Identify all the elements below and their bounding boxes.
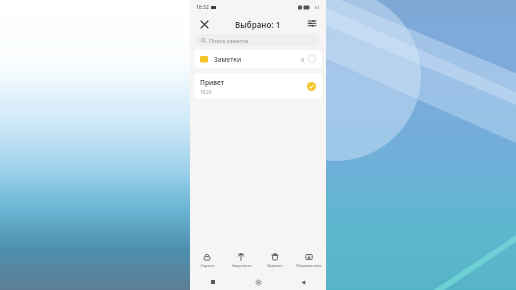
staticText: 16:32 [196, 4, 209, 11]
button[interactable]: Переместить [292, 250, 326, 274]
staticText: Закрепить [231, 263, 252, 268]
staticText: 16:29 [200, 89, 212, 95]
staticText: Привет [200, 78, 224, 87]
staticText: Скрыть [200, 263, 215, 268]
staticText: Поиск заметок [209, 37, 249, 44]
button[interactable]: Привет [194, 73, 322, 99]
button[interactable]: Home [236, 274, 281, 290]
button[interactable]: Удалить [258, 250, 292, 274]
button[interactable]: Поиск заметок [196, 34, 320, 46]
button[interactable]: Закрепить [224, 250, 258, 274]
staticText: Выбрано: 1 [235, 19, 281, 30]
button[interactable]: Sort [305, 17, 319, 31]
button[interactable]: Скрыть [190, 250, 224, 274]
staticText: 0 [301, 56, 305, 63]
button[interactable]: Заметки [194, 50, 322, 68]
button[interactable]: Back [281, 274, 326, 290]
button[interactable]: Close [197, 17, 211, 31]
staticText: Заметки [214, 55, 242, 64]
staticText: Удалить [267, 263, 283, 268]
staticText: 61 [315, 5, 320, 10]
button[interactable]: Recents [190, 274, 236, 290]
staticText: Переместить [296, 263, 322, 268]
